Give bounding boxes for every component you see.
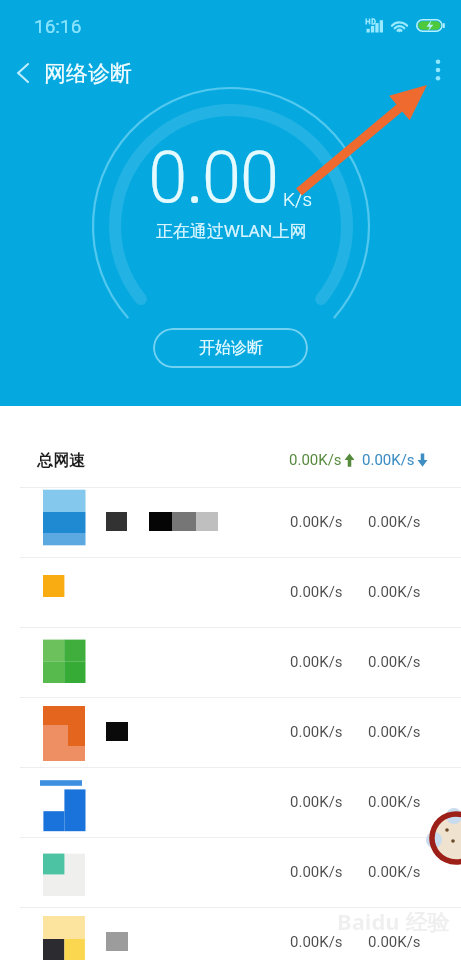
staticText: K/s [283, 188, 313, 210]
button[interactable]: 0.00K/s [0, 837, 461, 907]
button[interactable]: 0.00K/s [0, 907, 461, 960]
staticText: 0.00K/s [289, 451, 342, 469]
button[interactable]: 0.00K/s [0, 767, 461, 837]
staticText: 0.00K/s [362, 451, 415, 469]
staticText: 16:16 [34, 15, 82, 37]
staticText: 0.00K/s [368, 653, 421, 671]
staticText: 0.00K/s [290, 583, 343, 601]
staticText: 0.00K/s [290, 933, 343, 951]
button[interactable]: 0.00K/s [0, 487, 461, 557]
staticText: Baidu 经验 [337, 906, 450, 936]
staticText: 0.00K/s [368, 723, 421, 741]
staticText: 0.00K/s [290, 513, 343, 531]
staticText: 0.00K/s [290, 863, 343, 881]
staticText: 网络诊断 [44, 60, 132, 88]
staticText: 0.00K/s [290, 653, 343, 671]
staticText: 0.00K/s [290, 793, 343, 811]
staticText: 0.00K/s [368, 583, 421, 601]
button[interactable]: Back [0, 44, 46, 96]
button[interactable]: 0.00K/s [0, 697, 461, 767]
staticText: 0.00K/s [368, 513, 421, 531]
staticText: 0.00 [148, 127, 278, 222]
button[interactable]: 开始诊断 [153, 328, 308, 368]
button[interactable]: More options [415, 44, 461, 96]
staticText: 开始诊断 [199, 338, 263, 358]
button[interactable]: 0.00K/s [0, 557, 461, 627]
staticText: 0.00K/s [290, 723, 343, 741]
button[interactable]: 0.00K/s [0, 627, 461, 697]
staticText: 0.00K/s [368, 863, 421, 881]
staticText: 总网速 [37, 451, 85, 471]
staticText: 正在通过WLAN上网 [156, 219, 307, 242]
staticText: 0.00K/s [368, 933, 421, 951]
staticText: 0.00K/s [368, 793, 421, 811]
